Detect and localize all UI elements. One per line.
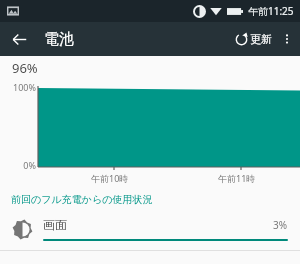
staticText: 0%	[2, 159, 36, 171]
staticText: 電池	[44, 30, 74, 49]
button[interactable]: 画面	[0, 208, 300, 250]
staticText: 更新	[250, 32, 272, 46]
button[interactable]: 戻る	[4, 24, 34, 54]
staticText: 3%	[273, 218, 288, 232]
staticText: 午前10時	[91, 172, 129, 184]
staticText: 午前11時	[218, 172, 256, 184]
staticText: 100%	[2, 81, 36, 93]
button[interactable]: その他のオプション	[274, 26, 300, 52]
staticText: 前回のフル充電からの使用状況	[11, 193, 153, 206]
button[interactable]: 更新	[233, 28, 274, 50]
button[interactable]	[0, 56, 300, 186]
staticText: 画面	[43, 217, 273, 232]
staticText: 96%	[12, 59, 38, 77]
staticText: 午前11:25	[248, 4, 294, 18]
